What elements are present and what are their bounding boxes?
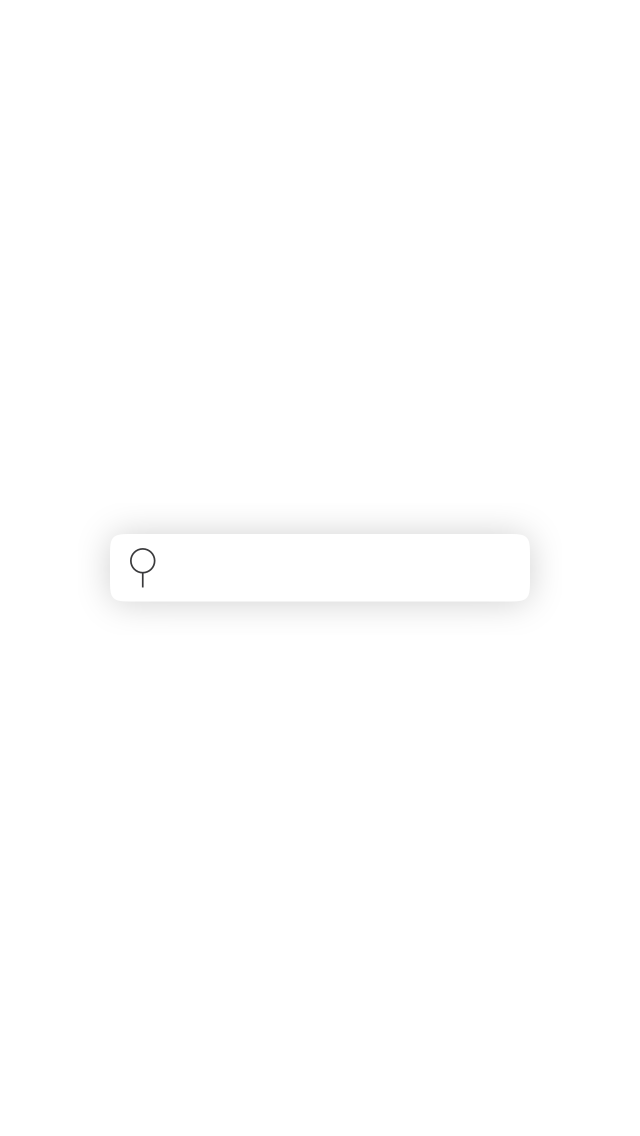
button[interactable]: Search — [110, 534, 530, 601]
